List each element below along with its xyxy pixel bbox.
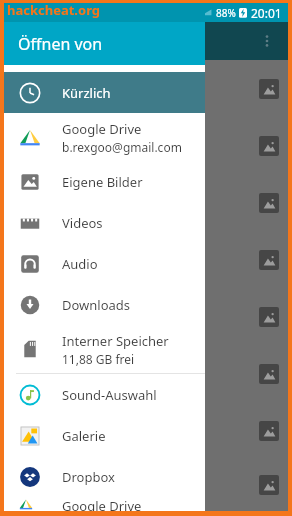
staticText: IMG_20180207.png	[14, 138, 251, 154]
staticText: IMG_20171144.png	[14, 309, 251, 325]
button[interactable]: More options	[252, 26, 282, 56]
staticText: Videos	[62, 214, 103, 232]
button[interactable]: Eigene Bilder	[4, 161, 205, 202]
button[interactable]: Kürzlich	[4, 72, 205, 113]
staticText: Kürzlich	[62, 84, 111, 102]
staticText: IMG_20171010.png	[14, 366, 251, 382]
staticText: IMG_20170933.png	[14, 423, 251, 439]
button[interactable]: IMG_20180108.png	[4, 174, 288, 231]
staticText: IMG_20170815.png	[14, 477, 251, 493]
staticText: Eigene Bilder	[62, 173, 143, 191]
staticText: Audio	[62, 255, 98, 273]
staticText: 88%	[216, 6, 236, 20]
button[interactable]: IMG_20170815.png	[4, 459, 288, 511]
button[interactable]: Öffnen von	[4, 22, 205, 65]
button[interactable]: IMG_20171010.png	[4, 345, 288, 402]
button[interactable]: Interner Speicher	[4, 325, 205, 373]
staticText: Sound-Auswahl	[62, 386, 157, 404]
button[interactable]: IMG_20170933.png	[4, 402, 288, 459]
button[interactable]: Galerie	[4, 415, 205, 456]
staticText: IMG_20180106.png	[14, 81, 251, 97]
button[interactable]: IMG_20171249.png	[4, 231, 288, 288]
staticText: 20:01	[251, 5, 282, 21]
staticText: b.rexgoo@gmail.com	[62, 139, 182, 155]
button[interactable]: IMG_20171144.png	[4, 288, 288, 345]
button[interactable]: Google Drive	[4, 113, 205, 161]
staticText: Galerie	[62, 427, 106, 445]
staticText: hackcheat.org	[7, 1, 101, 19]
button[interactable]: Audio	[4, 243, 205, 284]
staticText: Google Drive	[62, 120, 142, 138]
staticText: IMG_20180108.png	[14, 195, 251, 211]
staticText: Öffnen von	[18, 33, 103, 55]
button[interactable]: IMG_20180106.png	[4, 60, 288, 117]
staticText: Interner Speicher	[62, 332, 169, 350]
staticText: Dropbox	[62, 468, 115, 486]
staticText: 11,88 GB frei	[62, 351, 135, 367]
button[interactable]: IMG_20180207.png	[4, 117, 288, 174]
button[interactable]: Downloads	[4, 284, 205, 325]
button[interactable]: Videos	[4, 202, 205, 243]
staticText: Google Drive	[62, 497, 142, 511]
button[interactable]: Google Drive	[4, 497, 205, 511]
button[interactable]: Dropbox	[4, 456, 205, 497]
button[interactable]: Sound-Auswahl	[4, 374, 205, 415]
staticText: IMG_20171249.png	[14, 252, 251, 268]
staticText: Downloads	[62, 296, 131, 314]
